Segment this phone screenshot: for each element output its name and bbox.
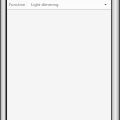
button[interactable]: Light dimming (Dark normal) [29,1,109,8]
staticText: Light dimming (Dark normal) [31,2,67,7]
staticText: Function [9,2,26,7]
other: Open function list [104,3,107,6]
